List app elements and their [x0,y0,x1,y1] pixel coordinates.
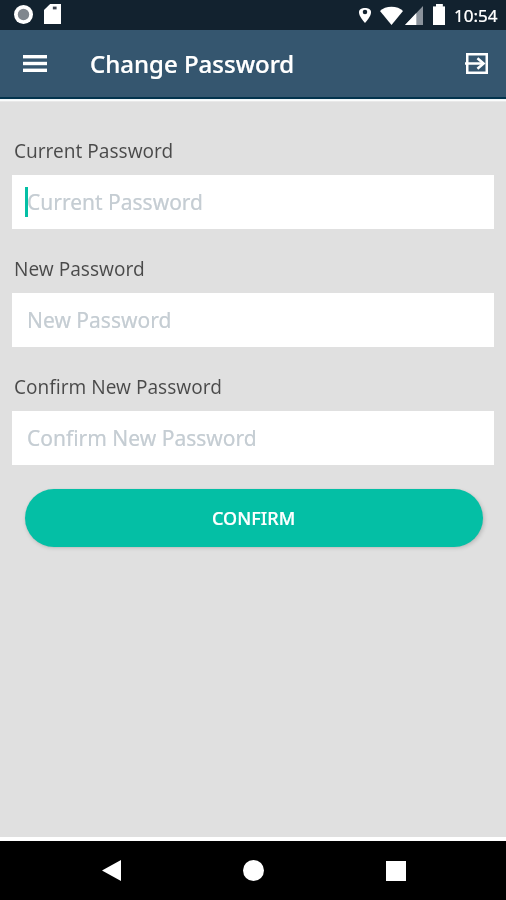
staticText: 10:54 [454,4,498,27]
button[interactable]: New Password [12,293,494,347]
button[interactable]: Back [81,841,141,900]
staticText: Current Password [14,138,174,164]
staticText: Confirm New Password [14,374,222,400]
staticText: Current Password [27,188,204,217]
button[interactable]: Confirm New Password [12,411,494,465]
button[interactable]: Home [223,841,283,900]
button[interactable]: Recent apps [366,841,426,900]
button[interactable]: Open navigation drawer [11,39,59,87]
button[interactable]: Logout [453,39,501,87]
staticText: Confirm New Password [27,424,257,453]
staticText: New Password [27,306,172,335]
staticText: CONFIRM [212,506,296,531]
staticText: Change Password [90,47,295,80]
button[interactable]: Current Password [12,175,494,229]
staticText: New Password [14,256,145,282]
button[interactable]: CONFIRM [25,489,483,547]
